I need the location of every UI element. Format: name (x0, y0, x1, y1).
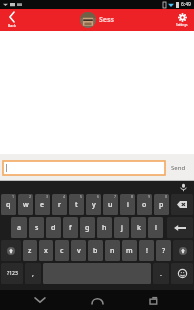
staticText: Sess (99, 15, 115, 25)
button[interactable]: Home (80, 290, 114, 310)
button[interactable]: Shift (1, 240, 21, 261)
staticText: v (77, 246, 81, 256)
staticText: Send (171, 164, 186, 172)
staticText: l (155, 223, 157, 233)
staticText: 5 (80, 194, 83, 199)
staticText: 0 (165, 194, 168, 199)
button[interactable]: ? (156, 240, 171, 261)
button[interactable]: x (39, 240, 53, 261)
staticText: ?123 (7, 270, 18, 277)
staticText: m (126, 246, 133, 256)
button[interactable]: v (71, 240, 86, 261)
staticText: ! (146, 246, 148, 256)
staticText: e (40, 200, 45, 210)
button[interactable]: s (29, 217, 44, 238)
staticText: i (127, 200, 129, 210)
button[interactable]: , (25, 263, 41, 284)
button[interactable]: Send (165, 154, 191, 181)
button[interactable]: y (86, 194, 101, 215)
button[interactable]: t (69, 194, 84, 215)
staticText: 2 (29, 194, 32, 199)
staticText: s (35, 223, 39, 233)
staticText: ? (162, 246, 166, 256)
button[interactable]: u (103, 194, 118, 215)
button[interactable]: a (11, 217, 27, 238)
button[interactable]: m (122, 240, 137, 261)
button[interactable] (3, 161, 165, 175)
staticText: 3 (46, 194, 49, 199)
staticText: o (142, 200, 147, 210)
staticText: 9 (148, 194, 151, 199)
button[interactable]: q (1, 194, 16, 215)
button[interactable]: Back (0, 9, 24, 31)
staticText: Settings (176, 23, 188, 27)
staticText: 7 (114, 194, 117, 199)
staticText: Back (8, 23, 16, 28)
staticText: w (23, 200, 29, 210)
button[interactable]: i (120, 194, 135, 215)
staticText: r (58, 200, 61, 210)
staticText: f (69, 223, 72, 233)
staticText: u (108, 200, 113, 210)
staticText: , (32, 269, 34, 279)
button[interactable]: z (23, 240, 37, 261)
button[interactable]: ! (139, 240, 154, 261)
button[interactable]: Shift (173, 240, 193, 261)
button[interactable]: n (105, 240, 120, 261)
staticText: x (44, 246, 48, 256)
button[interactable]: j (114, 217, 129, 238)
staticText: d (51, 223, 56, 233)
button[interactable]: h (97, 217, 112, 238)
staticText: q (6, 200, 11, 210)
button[interactable]: Sess (80, 12, 115, 28)
button[interactable]: Settings (170, 9, 194, 31)
staticText: n (110, 246, 115, 256)
button[interactable]: o (137, 194, 152, 215)
button[interactable]: c (55, 240, 69, 261)
button[interactable]: e (35, 194, 50, 215)
button[interactable]: f (63, 217, 78, 238)
button[interactable]: p (154, 194, 169, 215)
button[interactable]: d (46, 217, 61, 238)
staticText: y (92, 200, 96, 210)
staticText: c (60, 246, 64, 256)
button[interactable]: r (52, 194, 67, 215)
staticText: 6 (97, 194, 100, 199)
staticText: 6:49 (181, 1, 191, 8)
staticText: . (160, 269, 162, 279)
staticText: 8 (131, 194, 134, 199)
button[interactable]: w (18, 194, 33, 215)
button[interactable]: ?123 (1, 263, 23, 284)
button[interactable]: g (80, 217, 95, 238)
button[interactable]: Backspace (171, 194, 193, 215)
staticText: p (159, 200, 164, 210)
button[interactable]: Enter (167, 217, 193, 238)
button[interactable]: Voice input (179, 183, 188, 192)
staticText: z (28, 246, 32, 256)
staticText: b (93, 246, 98, 256)
staticText: k (137, 223, 141, 233)
button[interactable]: Back (23, 290, 57, 310)
button[interactable]: k (131, 217, 146, 238)
staticText: 1 (12, 194, 15, 199)
staticText: 4 (63, 194, 66, 199)
button[interactable]: b (88, 240, 103, 261)
button[interactable]: l (148, 217, 163, 238)
staticText: t (75, 200, 78, 210)
button[interactable]: Emoji (171, 263, 193, 284)
staticText: g (85, 223, 90, 233)
staticText: j (121, 223, 123, 233)
staticText: a (17, 223, 22, 233)
staticText: h (102, 223, 107, 233)
button[interactable]: . (153, 263, 169, 284)
button[interactable]: Recents (137, 290, 171, 310)
